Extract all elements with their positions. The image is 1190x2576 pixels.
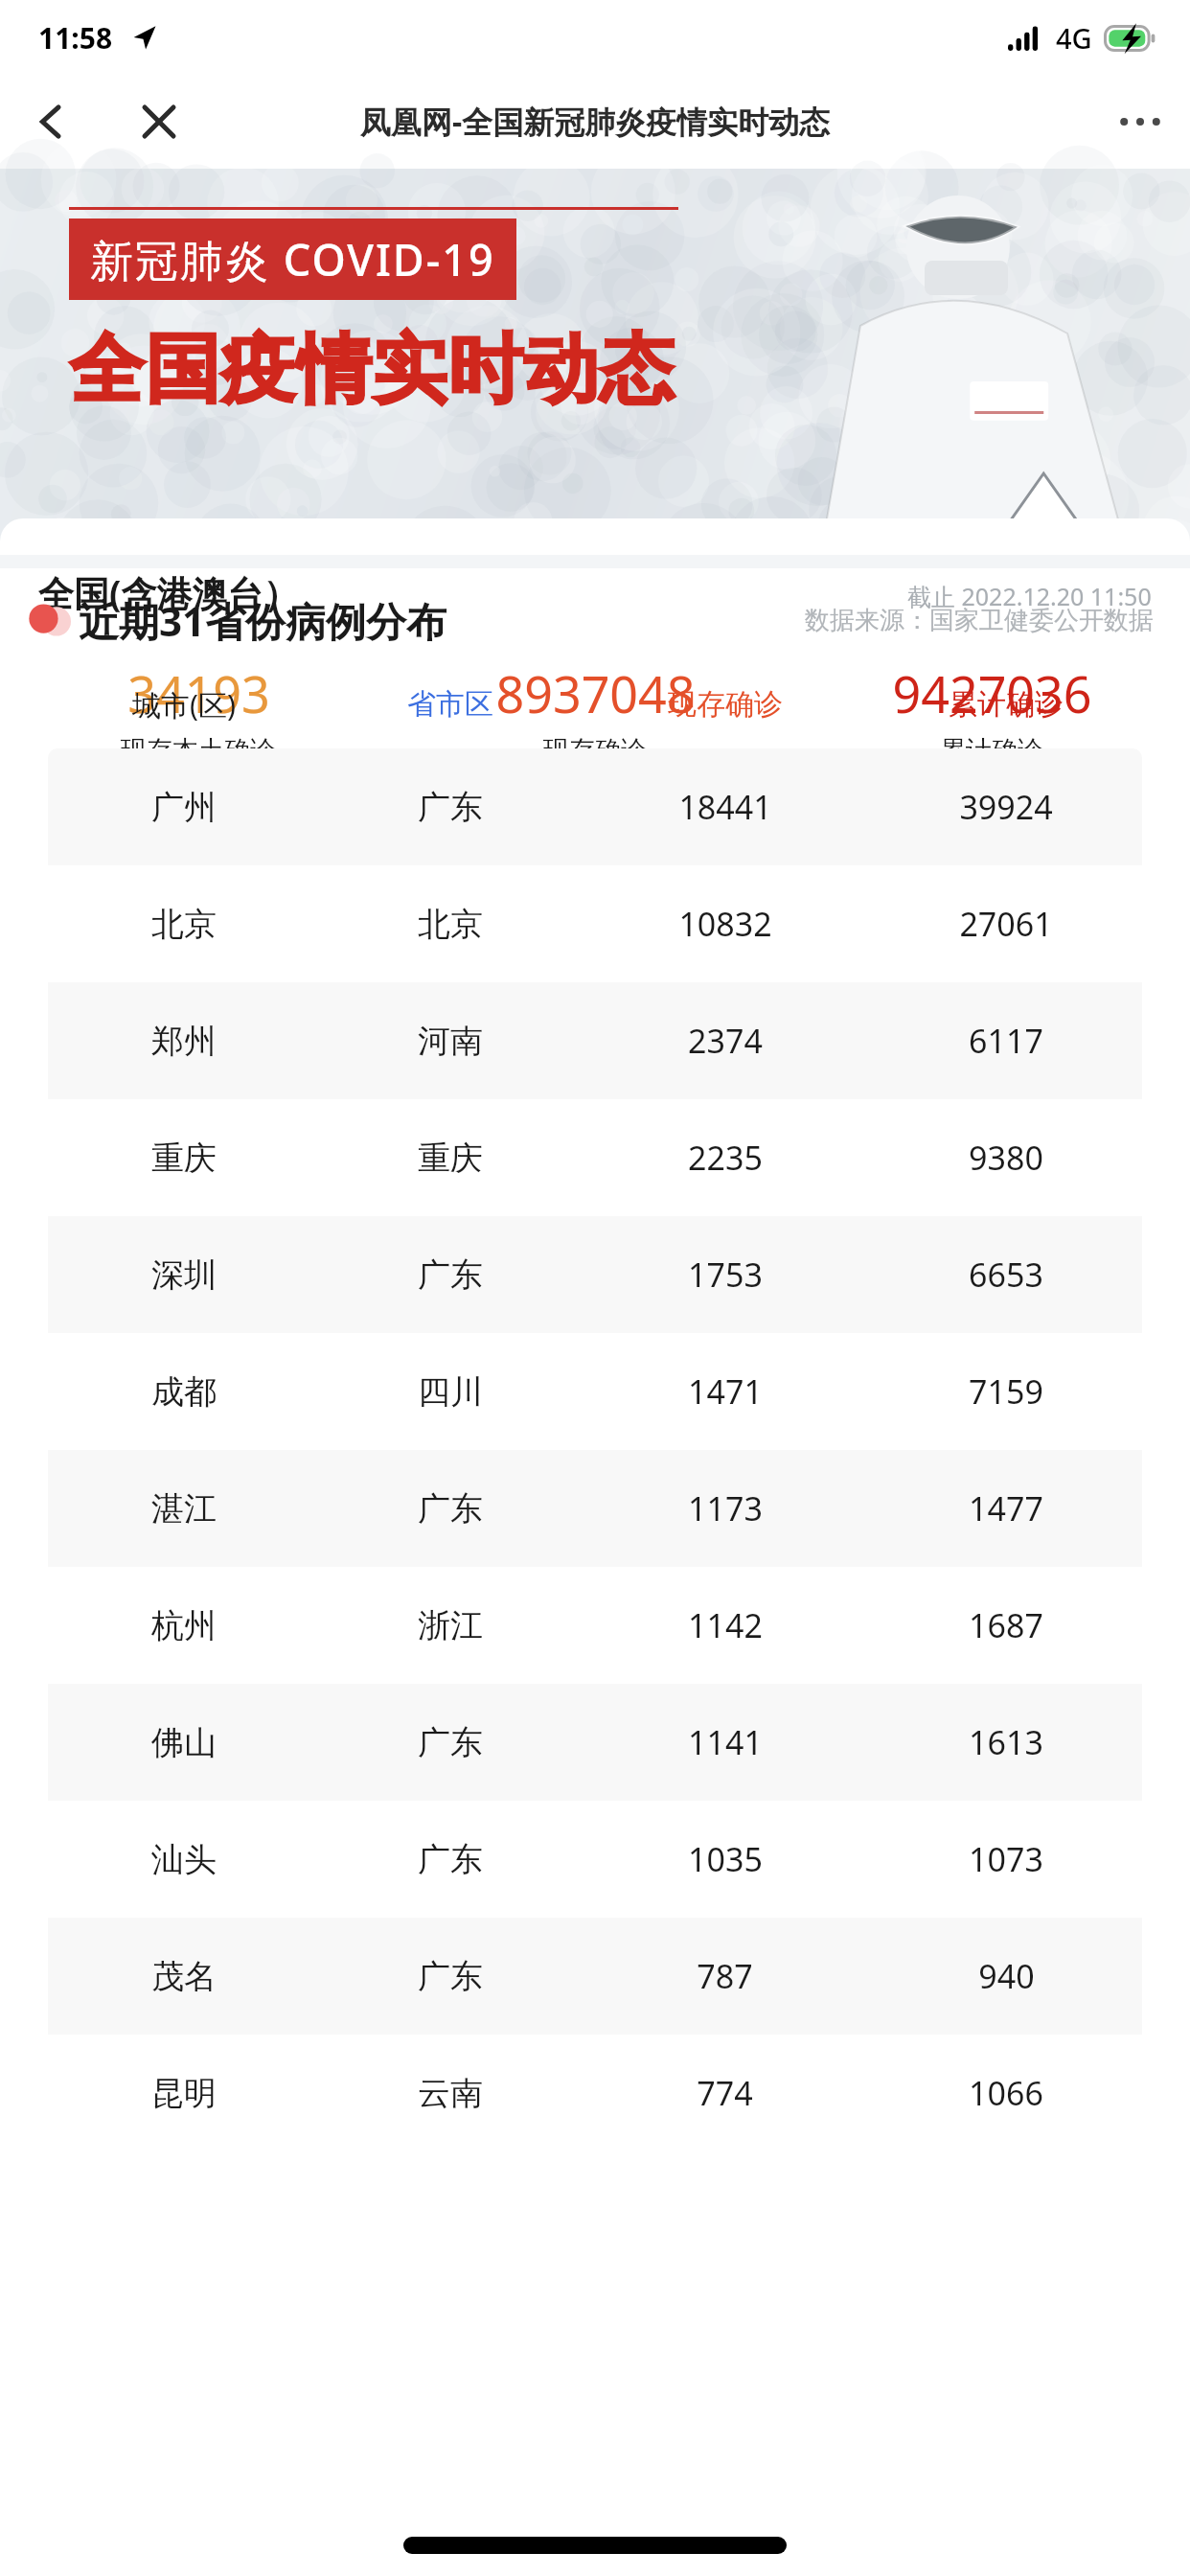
staticText: 城市(区): [132, 685, 236, 724]
staticText: 9427036: [892, 659, 1092, 727]
button[interactable]: 城市(区): [48, 685, 320, 724]
staticText: 1471: [688, 1369, 763, 1414]
staticText: 6653: [969, 1253, 1043, 1297]
staticText: 1141: [688, 1720, 763, 1764]
staticText: 全国(含港澳台）: [38, 568, 299, 617]
staticText: 新冠肺炎 COVID-19: [90, 230, 495, 288]
button[interactable]: 成都: [48, 1333, 1142, 1450]
staticText: 11:58: [38, 18, 113, 57]
staticText: 2235: [688, 1136, 763, 1180]
staticText: 北京: [418, 904, 483, 945]
staticText: 重庆: [151, 1138, 217, 1179]
staticText: 北京: [151, 904, 217, 945]
staticText: 1477: [969, 1486, 1043, 1530]
staticText: 广东: [418, 787, 483, 828]
button[interactable]: 广州: [48, 748, 1142, 865]
button[interactable]: 汕头: [48, 1801, 1142, 1918]
staticText: 现存确诊: [668, 686, 783, 723]
staticText: 现存本土确诊: [121, 734, 276, 767]
button[interactable]: 茂名: [48, 1918, 1142, 2035]
button[interactable]: 重庆: [48, 1099, 1142, 1216]
staticText: 18441: [678, 785, 772, 829]
staticText: 1613: [969, 1720, 1043, 1764]
staticText: 累计确诊: [940, 734, 1043, 767]
staticText: 1066: [969, 2071, 1043, 2115]
staticText: 湛江: [151, 1488, 217, 1529]
staticText: 广东: [418, 1488, 483, 1529]
button[interactable]: 杭州: [48, 1567, 1142, 1684]
staticText: 成都: [151, 1371, 217, 1413]
staticText: 6117: [969, 1019, 1043, 1063]
button[interactable]: 昆明: [48, 2035, 1142, 2151]
staticText: 数据来源：国家卫健委公开数据: [805, 605, 1154, 636]
staticText: 774: [697, 2071, 753, 2115]
staticText: 省市区: [407, 686, 493, 723]
staticText: 27061: [959, 902, 1053, 946]
staticText: 787: [697, 1954, 753, 1998]
staticText: 广东: [418, 1722, 483, 1763]
staticText: 1035: [688, 1837, 763, 1881]
staticText: 广东: [418, 1839, 483, 1880]
staticText: 近期31省份病例分布: [79, 593, 447, 648]
button[interactable]: 8937048: [397, 659, 793, 767]
staticText: 汕头: [151, 1839, 217, 1880]
button[interactable]: 佛山: [48, 1684, 1142, 1801]
staticText: 四川: [418, 1371, 483, 1413]
button[interactable]: 34193: [0, 659, 397, 767]
staticText: 1142: [688, 1603, 763, 1647]
button[interactable]: 省市区: [320, 686, 580, 723]
button[interactable]: 北京: [48, 865, 1142, 982]
staticText: 4G: [1056, 19, 1092, 57]
button[interactable]: 郑州: [48, 982, 1142, 1099]
staticText: 39924: [959, 785, 1053, 829]
staticText: 累计确诊: [949, 686, 1064, 723]
staticText: 河南: [418, 1021, 483, 1062]
staticText: 2374: [688, 1019, 763, 1063]
button[interactable]: 现存确诊: [580, 686, 870, 723]
staticText: 34193: [127, 659, 270, 727]
staticText: 重庆: [418, 1138, 483, 1179]
staticText: 茂名: [151, 1956, 217, 1997]
staticText: 940: [978, 1954, 1035, 1998]
button[interactable]: 累计确诊: [870, 686, 1142, 723]
staticText: 1173: [688, 1486, 763, 1530]
staticText: 10832: [678, 902, 772, 946]
staticText: 7159: [969, 1369, 1043, 1414]
staticText: 截止 2022.12.20 11:50: [907, 580, 1152, 612]
staticText: 郑州: [151, 1021, 217, 1062]
staticText: 8937048: [495, 659, 696, 727]
staticText: 凤凰网-全国新冠肺炎疫情实时动态: [360, 101, 831, 143]
button[interactable]: Back: [19, 89, 84, 154]
staticText: 深圳: [151, 1254, 217, 1296]
button[interactable]: 湛江: [48, 1450, 1142, 1567]
button[interactable]: Close: [126, 89, 192, 154]
staticText: 现存确诊: [543, 734, 647, 767]
staticText: 1687: [969, 1603, 1043, 1647]
staticText: 杭州: [151, 1605, 217, 1646]
staticText: 佛山: [151, 1722, 217, 1763]
staticText: 广东: [418, 1956, 483, 1997]
staticText: 广州: [151, 787, 217, 828]
staticText: 昆明: [151, 2073, 217, 2114]
staticText: 云南: [418, 2073, 483, 2114]
staticText: 全国疫情实时动态: [69, 323, 675, 417]
button[interactable]: More options: [1108, 89, 1173, 154]
staticText: 1753: [688, 1253, 763, 1297]
staticText: 1073: [969, 1837, 1043, 1881]
button[interactable]: 深圳: [48, 1216, 1142, 1333]
staticText: 9380: [969, 1136, 1043, 1180]
staticText: 广东: [418, 1254, 483, 1296]
button[interactable]: 9427036: [793, 659, 1190, 767]
staticText: 浙江: [418, 1605, 483, 1646]
